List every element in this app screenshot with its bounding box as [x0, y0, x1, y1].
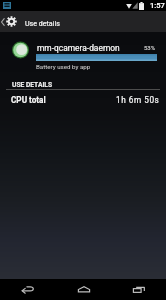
staticText: 1h 6m 50s	[116, 95, 160, 105]
staticText: 1:57	[150, 1, 165, 10]
button[interactable]: Home	[56, 279, 111, 300]
button[interactable]: CPU total	[0, 91, 166, 107]
button[interactable]: Recent apps	[111, 279, 166, 300]
staticText: CPU total	[11, 95, 46, 105]
staticText: 53%	[144, 44, 156, 51]
button[interactable]: Back	[0, 279, 56, 300]
staticText: mm-qcamera-daemon	[37, 43, 120, 53]
button[interactable]: Navigate up	[0, 11, 25, 32]
staticText: Use details	[25, 19, 60, 27]
staticText: USE DETAILS	[12, 81, 53, 89]
staticText: Battery used by app	[36, 63, 91, 70]
